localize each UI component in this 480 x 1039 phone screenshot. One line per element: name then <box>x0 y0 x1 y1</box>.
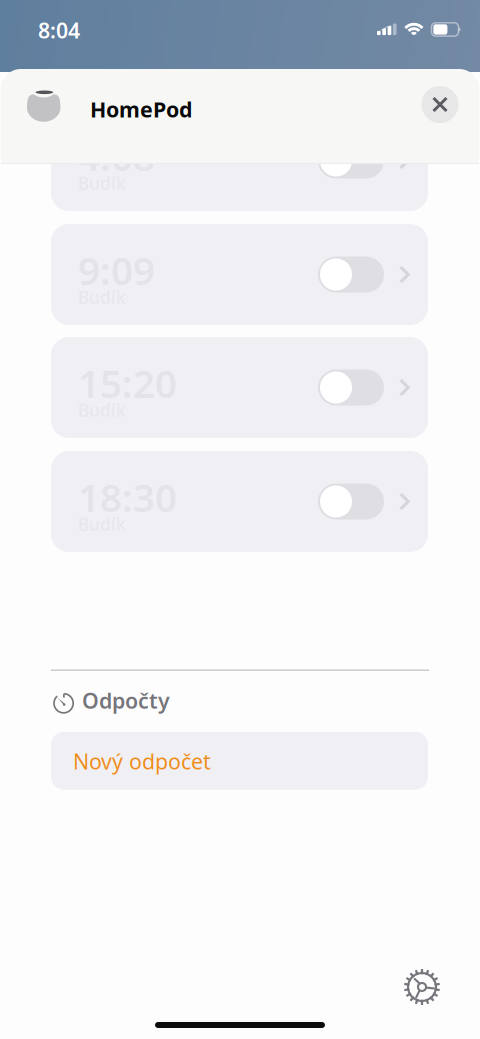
button[interactable]: Settings <box>403 968 441 1006</box>
staticText: Budík <box>78 512 126 535</box>
button[interactable]: 15:20 <box>51 337 428 438</box>
staticText: Nový odpočet <box>73 747 211 775</box>
staticText: Budík <box>78 171 126 194</box>
staticText: 8:04 <box>38 16 80 44</box>
staticText: Budík <box>78 285 126 308</box>
staticText: 4:08 <box>78 130 155 182</box>
staticText: Odpočty <box>82 686 170 715</box>
staticText: 15:20 <box>78 357 177 409</box>
staticText: 9:09 <box>78 244 155 296</box>
staticText: Budík <box>78 398 126 421</box>
staticText: 18:30 <box>78 471 177 523</box>
button[interactable]: 9:09 <box>51 224 428 325</box>
button[interactable]: Nový odpočet <box>51 732 428 790</box>
button[interactable]: Close <box>421 86 458 123</box>
button[interactable]: 18:30 <box>51 451 428 552</box>
staticText: HomePod <box>90 95 192 123</box>
